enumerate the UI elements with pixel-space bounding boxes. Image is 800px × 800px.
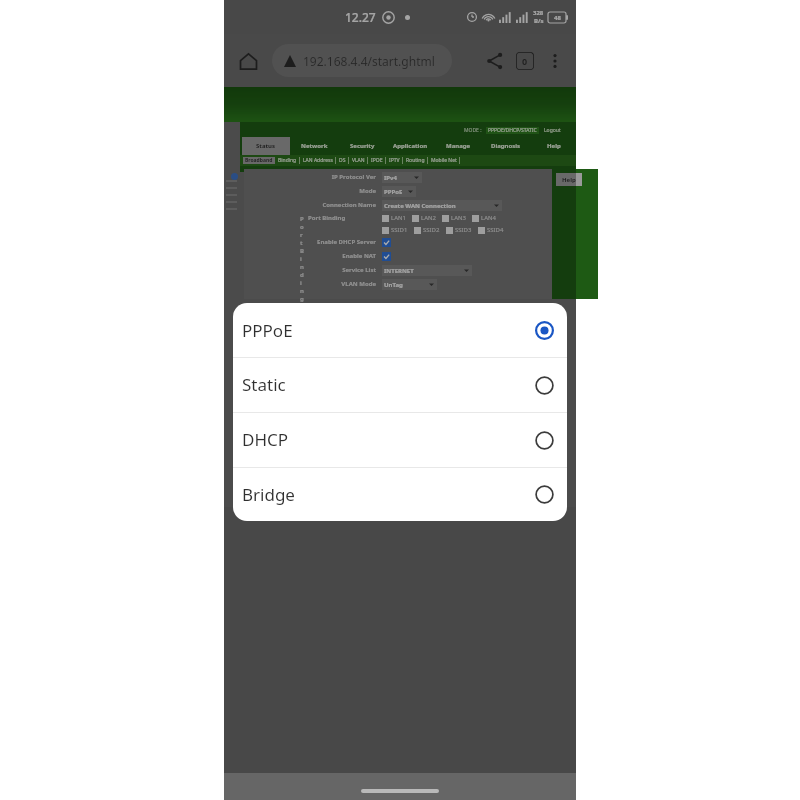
staticText: Diagnosis xyxy=(491,142,521,150)
button[interactable]: Help xyxy=(556,173,582,186)
button[interactable]: IPv4 xyxy=(382,172,422,183)
staticText: Port Binding xyxy=(308,214,346,222)
staticText: Connection Name xyxy=(224,201,376,209)
staticText: LAN3 xyxy=(451,214,466,222)
staticText: Help xyxy=(562,176,576,184)
staticText: B/s xyxy=(534,17,544,25)
staticText: Application xyxy=(393,142,428,150)
staticText: Status xyxy=(256,142,276,150)
staticText: 48 xyxy=(554,14,561,22)
staticText: VLAN xyxy=(352,157,365,164)
staticText: Logout xyxy=(544,127,561,134)
button[interactable]: UnTag xyxy=(382,279,437,290)
button[interactable]: PPPoE xyxy=(233,303,567,357)
staticText: PPPOE/DHCP/STATIC xyxy=(488,127,537,134)
staticText: Broadband xyxy=(245,157,273,164)
staticText: 0 xyxy=(522,55,528,67)
staticText: Mode xyxy=(224,187,376,195)
staticText: Help xyxy=(547,142,561,150)
staticText: Bridge xyxy=(242,483,295,506)
staticText: INTERNET xyxy=(384,267,414,275)
staticText: SSID3 xyxy=(455,226,472,234)
staticText: Routing xyxy=(406,157,425,164)
staticText: Service List xyxy=(224,266,376,274)
button[interactable]: Share xyxy=(480,46,510,76)
staticText: Enable NAT xyxy=(224,252,376,260)
button[interactable]: More options xyxy=(540,46,570,76)
staticText: PPPoE xyxy=(384,188,403,196)
staticText: UnTag xyxy=(384,281,403,289)
staticText: IP Protocol Ver xyxy=(224,173,376,181)
staticText: Network xyxy=(301,142,328,150)
staticText: LAN4 xyxy=(481,214,496,222)
staticText: MODE : xyxy=(464,127,482,134)
button[interactable]: Create WAN Connection xyxy=(382,200,502,211)
button[interactable]: 192.168.4.4/start.ghtml xyxy=(272,44,452,77)
staticText: Binding xyxy=(278,157,297,164)
staticText: LAN1 xyxy=(391,214,406,222)
staticText: LAN2 xyxy=(421,214,436,222)
staticText: 328 xyxy=(533,9,544,17)
staticText: 12.27 xyxy=(345,9,376,25)
staticText: Static xyxy=(242,373,286,396)
staticText: Create WAN Connection xyxy=(384,202,456,210)
staticText: Enable DHCP Server xyxy=(224,238,376,246)
button[interactable]: INTERNET xyxy=(382,265,472,276)
staticText: VLAN Mode xyxy=(224,280,376,288)
staticText: Mobile Net xyxy=(431,157,457,164)
staticText: Security xyxy=(350,142,375,150)
staticText: IPTV xyxy=(389,157,400,164)
staticText: DS xyxy=(339,157,346,164)
button[interactable]: Tabs xyxy=(510,46,540,76)
staticText: SSID1 xyxy=(391,226,408,234)
staticText: LAN Address xyxy=(303,157,333,164)
staticText: SSID4 xyxy=(487,226,504,234)
staticText: PPPoE xyxy=(242,319,293,342)
button[interactable]: Static xyxy=(233,357,567,412)
staticText: SSID2 xyxy=(423,226,440,234)
button[interactable]: DHCP xyxy=(233,412,567,467)
staticText: DHCP xyxy=(242,428,289,451)
button[interactable]: Home xyxy=(232,45,264,77)
button[interactable]: Bridge xyxy=(233,467,567,521)
staticText: 192.168.4.4/start.ghtml xyxy=(303,53,435,69)
staticText: IPOE xyxy=(371,157,383,164)
button[interactable]: PPPoE xyxy=(382,186,416,197)
staticText: Manage xyxy=(446,142,471,150)
staticText: IPv4 xyxy=(384,174,397,182)
